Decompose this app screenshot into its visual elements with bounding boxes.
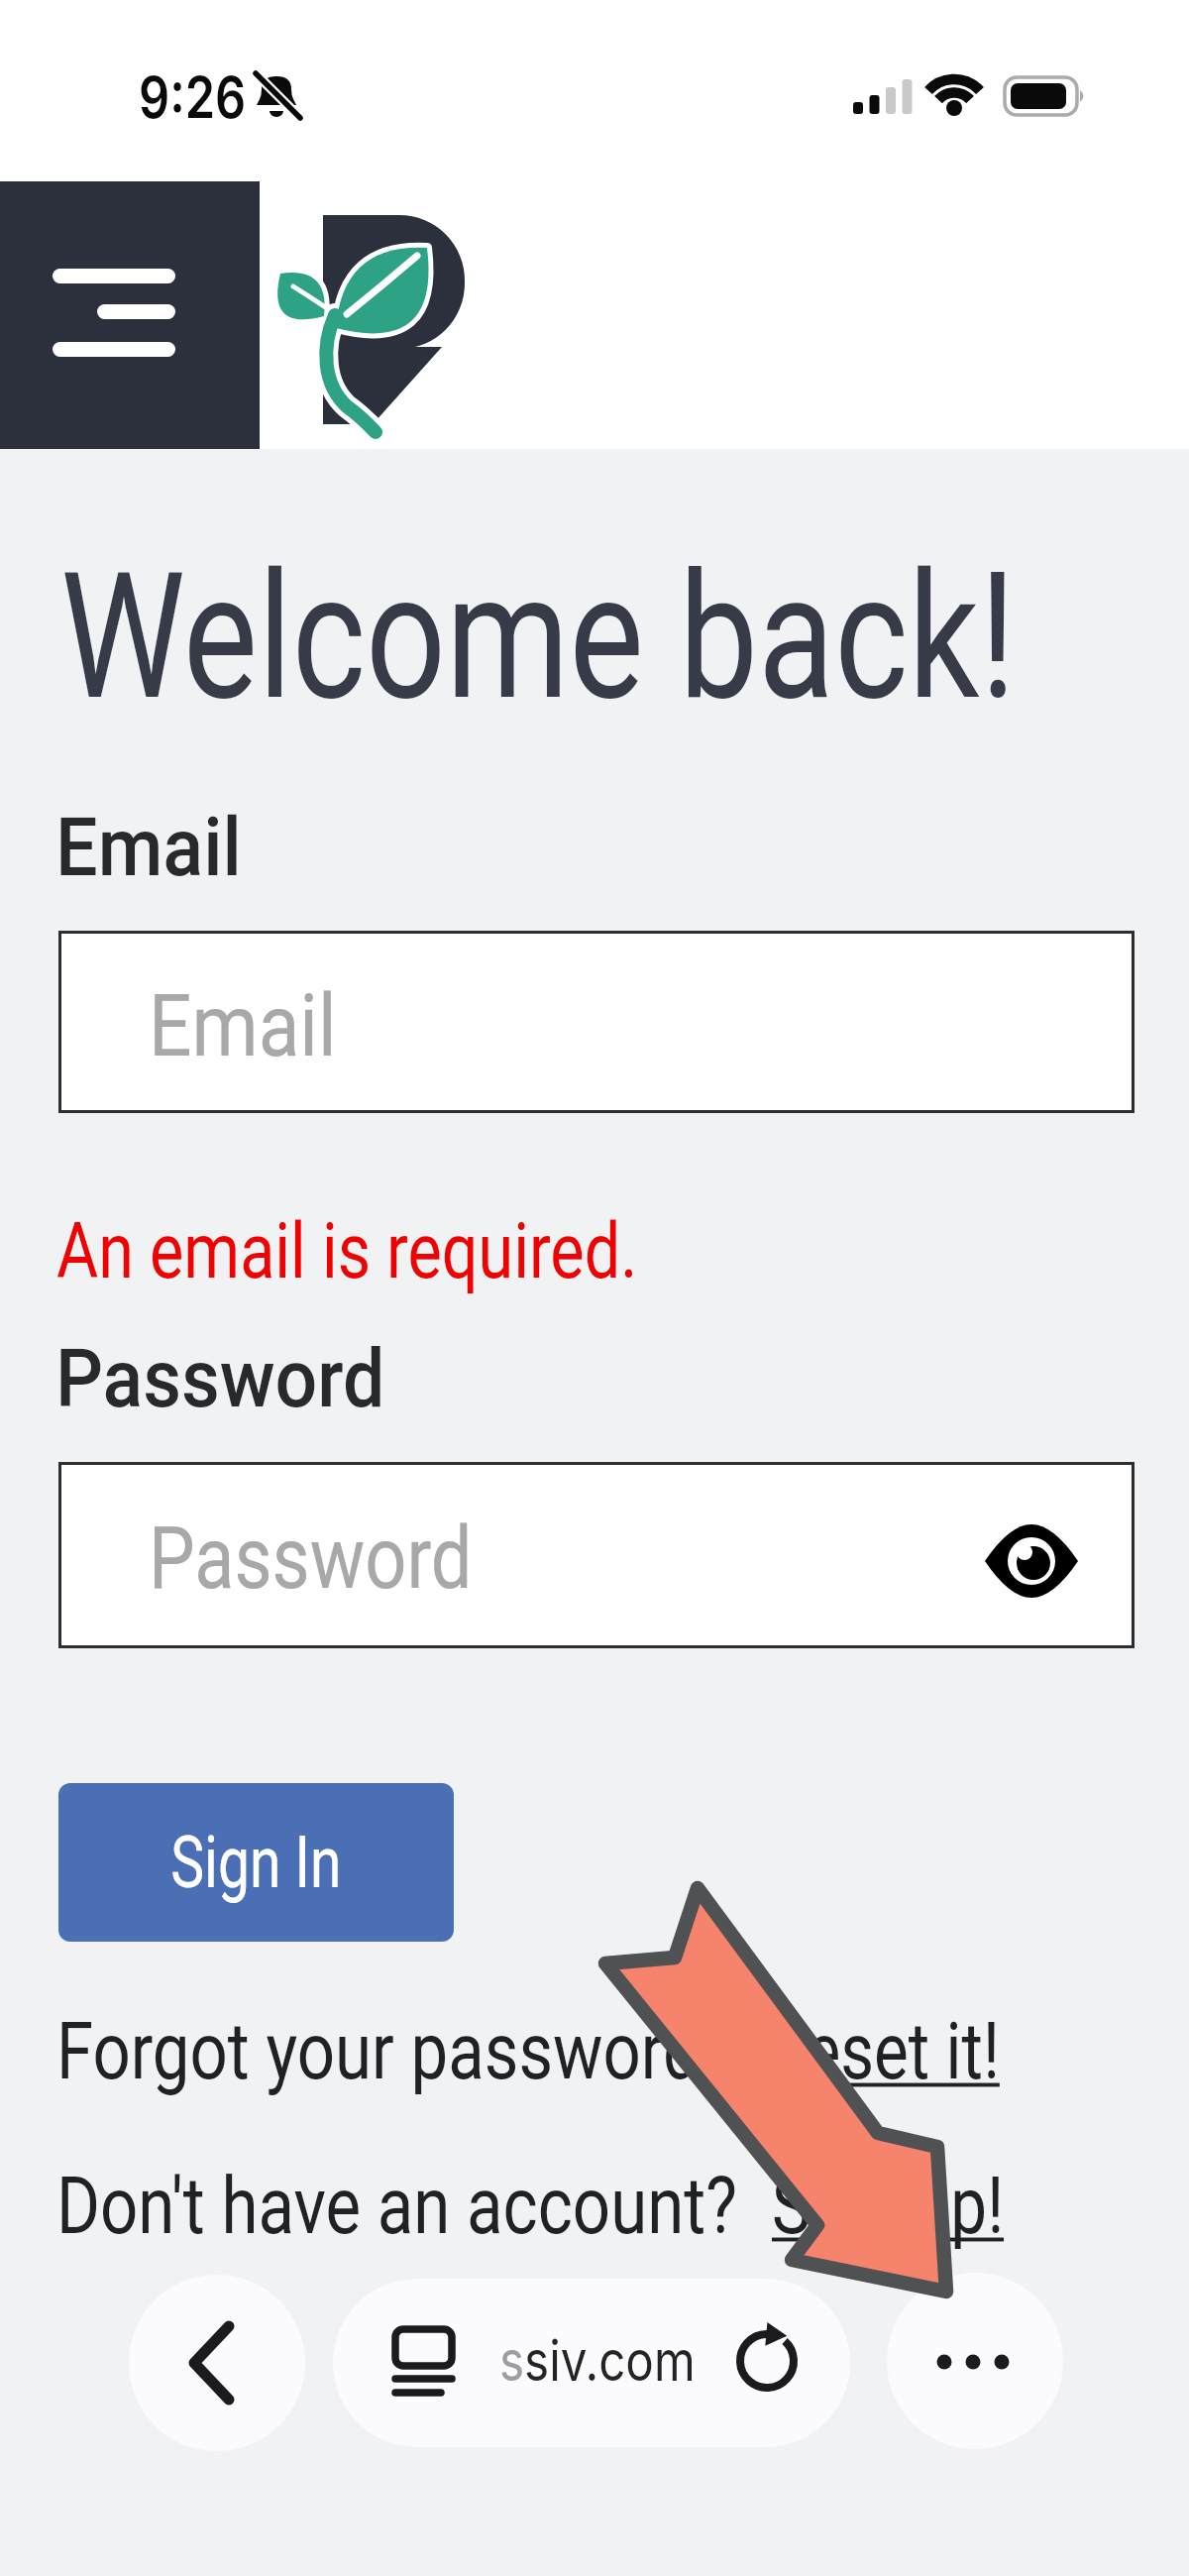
staticText: Sign In (171, 1820, 342, 1905)
staticText: Welcome back! (60, 535, 1016, 739)
staticText: 9:26 (139, 62, 246, 132)
staticText: Email (149, 974, 337, 1076)
staticText: ssiv.com (499, 2327, 696, 2395)
staticText: Don't have an account? (56, 2161, 738, 2253)
staticText: Email (55, 800, 242, 895)
staticText: Password (55, 1331, 386, 1426)
staticText: Reset it! (766, 2006, 1000, 2098)
staticText: Sign up! (772, 2161, 1004, 2253)
staticText: An email is required. (56, 1206, 638, 1296)
staticText: Password (149, 1507, 472, 1609)
staticText: Forgot your password? (56, 2006, 732, 2098)
